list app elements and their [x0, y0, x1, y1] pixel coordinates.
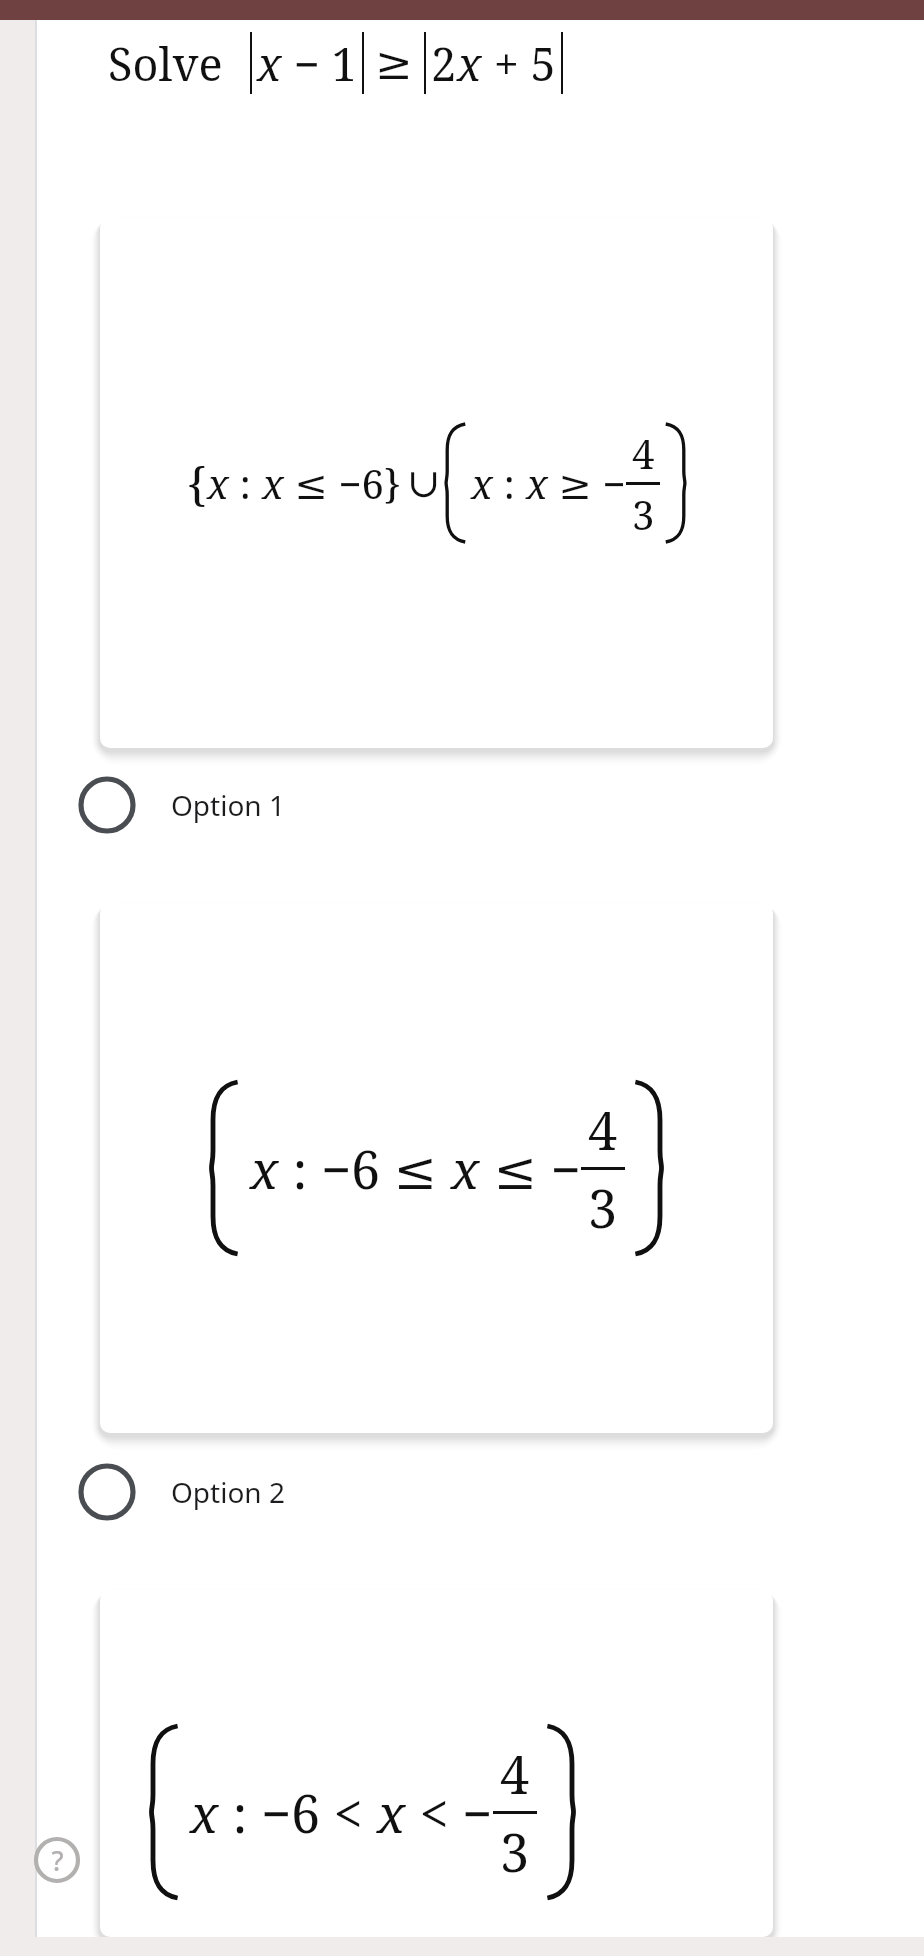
staticText: ≥ − [548, 456, 626, 510]
staticText: Option 2 [171, 1473, 285, 1511]
staticText: + 5 [482, 33, 556, 94]
staticText: Solve [108, 33, 223, 94]
staticText: : −6 < [219, 1777, 377, 1848]
staticText: x [190, 1777, 219, 1848]
staticText: ? [51, 1842, 64, 1879]
staticText: x [471, 456, 493, 510]
button[interactable]: Help [33, 1836, 81, 1884]
staticText: 3 [588, 1172, 618, 1243]
staticText: 4 [632, 426, 655, 480]
button[interactable]: Option 2 [78, 1452, 498, 1532]
staticText: x [250, 1133, 279, 1204]
staticText: x [451, 1133, 480, 1204]
staticText: 4 [588, 1094, 618, 1165]
staticText: 3 [500, 1816, 530, 1887]
staticText: x [257, 33, 282, 94]
staticText: ≤ −6} [284, 456, 401, 510]
staticText: 2 [431, 33, 457, 94]
staticText: : −6 ≤ [279, 1133, 451, 1204]
staticText: 4 [500, 1738, 530, 1809]
staticText: : [229, 456, 262, 510]
staticText: ≤ − [480, 1133, 581, 1204]
staticText: { [187, 452, 207, 515]
staticText: − 1 [282, 33, 357, 94]
button[interactable]: { [100, 218, 773, 748]
staticText: x [457, 33, 482, 94]
staticText: < − [406, 1777, 493, 1848]
button[interactable]: Option 1 [78, 765, 498, 845]
button[interactable]: x [100, 1590, 773, 1937]
staticText: x [207, 456, 229, 510]
staticText: x [526, 456, 548, 510]
staticText: x [377, 1777, 406, 1848]
staticText: ≥ [375, 37, 413, 89]
staticText: 3 [632, 487, 655, 541]
staticText: ∪ [407, 460, 441, 507]
staticText: Option 1 [171, 786, 285, 824]
staticText: : [493, 456, 526, 510]
button[interactable]: x [100, 903, 773, 1433]
staticText: x [262, 456, 284, 510]
